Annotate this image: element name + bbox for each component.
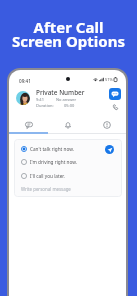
button[interactable]: Call back xyxy=(110,102,120,112)
staticText: 09:41 xyxy=(19,78,31,84)
staticText: I'll call you later. xyxy=(30,173,65,179)
button[interactable]: Can't talk right now. xyxy=(21,143,114,155)
staticText: 05:00 xyxy=(64,103,75,108)
staticText: I'm driving right now. xyxy=(30,159,77,165)
button[interactable]: Info xyxy=(87,116,126,134)
button[interactable]: I'll call you later. xyxy=(21,170,114,182)
staticText: 51% xyxy=(105,77,113,82)
staticText: No answer xyxy=(56,97,77,102)
button[interactable]: Message xyxy=(109,88,121,100)
staticText: After Call Screen Options xyxy=(0,17,137,51)
staticText: Private Number xyxy=(36,88,85,97)
staticText: 9:41 xyxy=(36,97,44,102)
button[interactable]: Reminders xyxy=(48,116,87,134)
button[interactable]: Send xyxy=(105,145,114,154)
button[interactable]: Messages xyxy=(9,116,48,134)
button[interactable]: I'm driving right now. xyxy=(21,156,114,168)
staticText: Write personal message xyxy=(21,186,71,192)
staticText: Duration: xyxy=(36,103,54,108)
staticText: Can't talk right now. xyxy=(30,146,74,152)
